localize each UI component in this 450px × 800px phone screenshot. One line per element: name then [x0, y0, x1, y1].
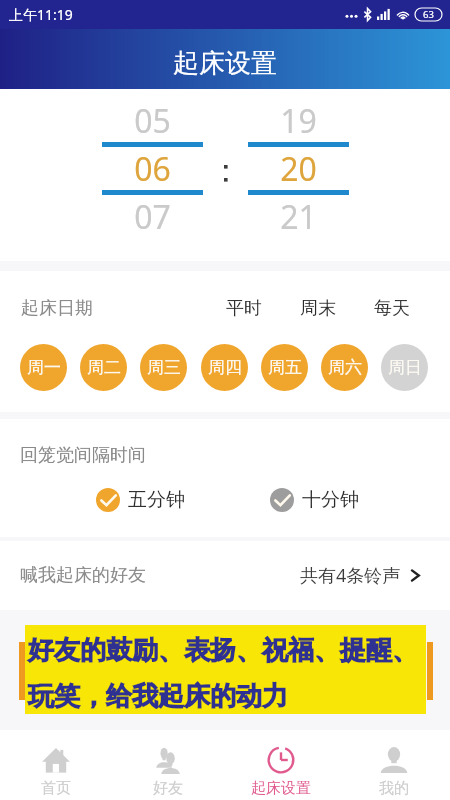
staticText: 19 [280, 99, 317, 143]
staticText: 起床日期 [21, 297, 93, 320]
button[interactable]: 我的 [337, 730, 450, 800]
staticText: 我的 [379, 779, 409, 798]
button[interactable]: 周六 [321, 344, 368, 391]
button[interactable]: 首页 [0, 730, 112, 800]
staticText: 回笼觉间隔时间 [20, 444, 146, 467]
button[interactable]: 周五 [261, 344, 308, 391]
staticText: 共有4条铃声 [300, 563, 401, 588]
button[interactable]: 周四 [201, 344, 248, 391]
staticText: 周五 [268, 357, 302, 378]
staticText: 好友 [153, 779, 183, 798]
button[interactable]: 十分钟 [270, 488, 359, 512]
button[interactable]: 起床设置 [224, 730, 337, 800]
staticText: 21 [280, 195, 317, 239]
button[interactable]: 周一 [20, 344, 67, 391]
staticText: 周末 [300, 297, 336, 320]
button[interactable]: 每天 [363, 291, 437, 326]
staticText: 07 [134, 195, 171, 239]
staticText: 63 [423, 8, 434, 21]
staticText: 周日 [388, 357, 422, 378]
staticText: 喊我起床的好友 [20, 564, 146, 587]
staticText: 周三 [147, 357, 181, 378]
button[interactable]: 周日 [381, 344, 428, 391]
staticText: 平时 [226, 297, 262, 320]
staticText: 周二 [87, 357, 121, 378]
staticText: 玩笑，给我起床的动力 [28, 680, 288, 713]
button[interactable]: 周三 [140, 344, 187, 391]
staticText: 周一 [27, 357, 61, 378]
staticText: 十分钟 [302, 488, 359, 512]
staticText: 05 [134, 99, 171, 143]
button[interactable]: 周二 [80, 344, 127, 391]
staticText: 每天 [374, 297, 410, 320]
staticText: 周四 [208, 357, 242, 378]
staticText: 起床设置 [251, 779, 311, 798]
button[interactable]: 周末 [289, 291, 363, 326]
button[interactable]: 平时 [215, 291, 289, 326]
button[interactable]: 19 [248, 89, 349, 261]
staticText: 首页 [41, 779, 71, 798]
staticText: 20 [280, 147, 317, 191]
button[interactable]: 好友的鼓励、表扬、祝福、提醒、 [25, 625, 426, 714]
button[interactable]: 好友 [112, 730, 224, 800]
staticText: 起床设置 [173, 47, 277, 80]
staticText: 好友的鼓励、表扬、祝福、提醒、 [28, 634, 418, 667]
staticText: 06 [134, 147, 171, 191]
button[interactable]: 五分钟 [96, 488, 185, 512]
staticText: 周六 [328, 357, 362, 378]
button[interactable]: 05 [102, 89, 203, 261]
staticText: 五分钟 [128, 488, 185, 512]
staticText: 上午11:19 [9, 5, 73, 24]
button[interactable]: 喊我起床的好友 [0, 541, 450, 610]
